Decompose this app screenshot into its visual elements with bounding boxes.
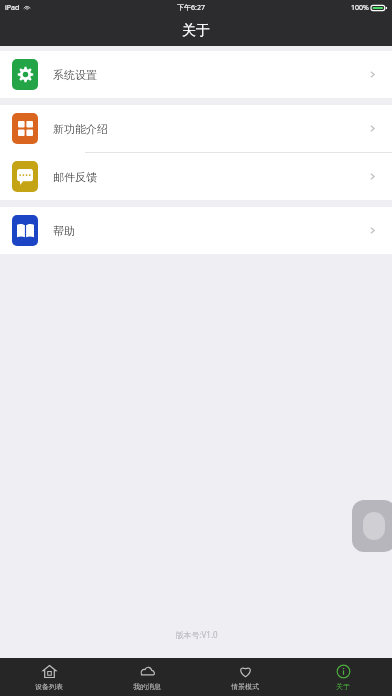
- button[interactable]: 我的消息: [98, 658, 196, 696]
- staticText: 100%: [351, 3, 369, 13]
- staticText: 情景模式: [231, 682, 259, 691]
- staticText: iPad: [5, 3, 20, 13]
- button[interactable]: 情景模式: [196, 658, 294, 696]
- staticText: 帮助: [53, 224, 75, 238]
- button[interactable]: 新功能介绍: [0, 105, 392, 152]
- button[interactable]: 邮件反馈: [0, 153, 392, 200]
- button[interactable]: 帮助: [0, 207, 392, 254]
- staticText: 邮件反馈: [53, 170, 97, 184]
- button[interactable]: 设备列表: [0, 658, 98, 696]
- staticText: 版本号:V1.0: [175, 629, 218, 640]
- button[interactable]: 系统设置: [0, 51, 392, 98]
- staticText: 我的消息: [133, 682, 161, 691]
- staticText: 下午6:27: [177, 3, 205, 13]
- staticText: 系统设置: [53, 68, 97, 82]
- staticText: 关于: [336, 682, 350, 691]
- button[interactable]: 关于: [294, 658, 392, 696]
- button[interactable]: AssistiveTouch: [352, 500, 392, 552]
- staticText: 设备列表: [35, 682, 63, 691]
- staticText: 新功能介绍: [53, 122, 108, 136]
- staticText: 关于: [182, 22, 210, 40]
